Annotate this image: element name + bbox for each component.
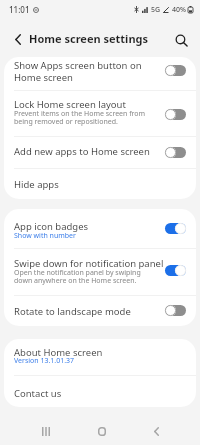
button[interactable]: Show Apps screen button on Home screen <box>4 57 196 91</box>
button[interactable]: Switch off <box>165 109 186 120</box>
button[interactable]: Swipe down for notification panel <box>4 249 196 296</box>
button[interactable]: Switch off <box>165 65 186 76</box>
button[interactable]: About Home screen <box>4 339 196 376</box>
staticText: About Home screen <box>14 346 103 359</box>
staticText: 5G <box>151 5 161 15</box>
button[interactable]: Add new apps to Home screen <box>4 137 196 169</box>
staticText: Contact us <box>14 387 62 400</box>
staticText: Show Apps screen button on Home screen <box>14 59 146 83</box>
staticText: Swipe down for notification panel <box>14 257 164 270</box>
staticText: Hide apps <box>14 178 59 191</box>
button[interactable]: App icon badges <box>4 209 196 249</box>
button[interactable]: Switch off <box>165 147 186 158</box>
staticText: Open the notification panel by swiping d… <box>14 268 141 285</box>
staticText: 40% <box>172 5 186 15</box>
button[interactable]: Home <box>88 418 115 445</box>
button[interactable]: Recent apps <box>32 418 59 445</box>
button[interactable]: Back <box>143 418 170 445</box>
staticText: Rotate to landscape mode <box>14 305 131 318</box>
button[interactable]: Hide apps <box>4 169 196 199</box>
button[interactable]: Contact us <box>4 376 196 407</box>
staticText: Show with number <box>14 231 76 241</box>
button[interactable]: Rotate to landscape mode <box>4 296 196 326</box>
button[interactable]: Switch off <box>165 305 186 316</box>
staticText: Lock Home screen layout <box>14 98 126 111</box>
button[interactable]: Lock Home screen layout <box>4 91 196 137</box>
staticText: 11:01 <box>9 4 30 15</box>
staticText: Version 13.1.01.37 <box>14 356 75 366</box>
staticText: Home screen settings <box>29 31 149 46</box>
staticText: App icon badges <box>14 220 89 233</box>
button[interactable]: Navigate up <box>7 28 29 50</box>
staticText: Add new apps to Home screen <box>14 145 150 158</box>
button[interactable]: Switch on <box>165 223 186 234</box>
button[interactable]: Search <box>170 29 192 51</box>
button[interactable]: Switch on <box>165 265 186 276</box>
staticText: Prevent items on the Home screen from be… <box>14 109 146 126</box>
